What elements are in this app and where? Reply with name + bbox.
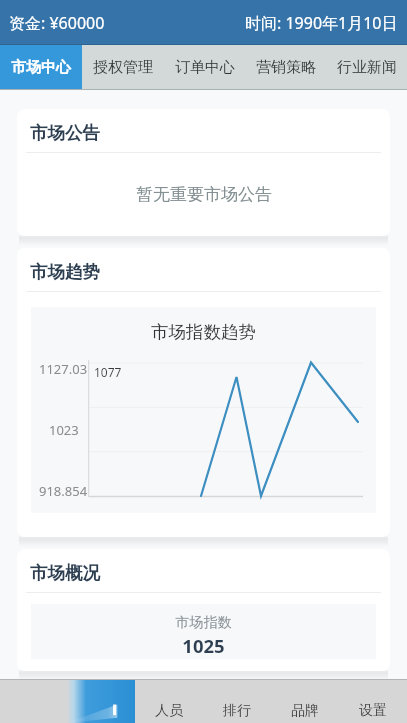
button[interactable]: 营销策略 — [245, 45, 326, 90]
staticText: 918.854 — [39, 482, 88, 500]
staticText: 品牌 — [291, 702, 319, 720]
button[interactable]: 行业新闻 — [326, 45, 407, 90]
staticText: 1127.03 — [39, 360, 88, 378]
staticText: 暂无重要市场公告 — [136, 184, 272, 205]
staticText: 授权管理 — [93, 58, 153, 77]
staticText: 市场趋势 — [30, 261, 100, 283]
button[interactable]: 人员 — [135, 679, 203, 723]
staticText: 市场公告 — [30, 122, 100, 144]
staticText: 1077 — [94, 364, 122, 380]
staticText: 排行 — [223, 702, 251, 720]
button[interactable] — [0, 679, 67, 723]
staticText: 市场概况 — [30, 562, 100, 584]
staticText: 人员 — [155, 702, 183, 720]
staticText: 市场指数 — [31, 614, 376, 632]
button[interactable]: 排行 — [203, 679, 271, 723]
staticText: 时间: 1990年1月10日 — [245, 12, 398, 34]
staticText: 1023 — [49, 421, 79, 439]
staticText: 资金: ¥60000 — [9, 12, 105, 34]
button[interactable]: 授权管理 — [82, 45, 164, 90]
staticText: 设置 — [359, 702, 387, 720]
staticText: 1025 — [31, 633, 376, 658]
button[interactable]: 设置 — [339, 679, 407, 723]
staticText: 市场中心 — [11, 58, 71, 77]
button[interactable]: 订单中心 — [164, 45, 245, 90]
staticText: 订单中心 — [175, 58, 235, 77]
button[interactable]: 品牌 — [271, 679, 339, 723]
staticText: 营销策略 — [256, 58, 316, 77]
button[interactable]: 市场中心 — [0, 45, 82, 90]
staticText: 行业新闻 — [337, 58, 397, 77]
staticText: 市场指数趋势 — [31, 321, 376, 343]
button[interactable]: 首页 — [67, 679, 135, 723]
